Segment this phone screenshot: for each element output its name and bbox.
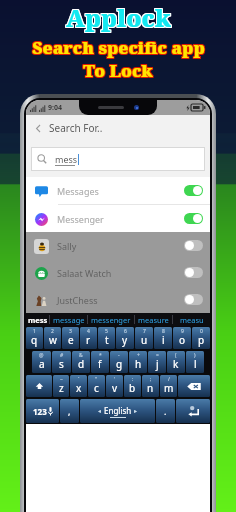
button[interactable]: . bbox=[156, 399, 175, 423]
button[interactable]: & bbox=[72, 351, 90, 373]
button[interactable]: = bbox=[148, 351, 166, 373]
staticText: m bbox=[164, 381, 174, 395]
staticText: t bbox=[105, 333, 109, 347]
button[interactable]: 7 bbox=[135, 327, 153, 349]
button[interactable]: + bbox=[129, 351, 147, 373]
button[interactable]: : bbox=[124, 375, 141, 397]
button[interactable]: Shift bbox=[26, 375, 52, 397]
staticText: Applock bbox=[65, 1, 170, 34]
button[interactable]: # bbox=[52, 351, 71, 373]
staticText: y bbox=[122, 333, 128, 347]
staticText: To Lock bbox=[84, 59, 154, 82]
staticText: . bbox=[164, 405, 167, 417]
staticText: " bbox=[95, 376, 98, 383]
button[interactable]: JustChess bbox=[26, 286, 210, 313]
staticText: Applock bbox=[65, 0, 170, 33]
staticText: = bbox=[156, 352, 159, 359]
button[interactable]: Salaat Watch bbox=[26, 259, 210, 286]
button[interactable]: ( bbox=[167, 351, 185, 373]
button[interactable]: 4 bbox=[80, 327, 97, 349]
button[interactable]: 9 bbox=[173, 327, 191, 349]
staticText: Applock bbox=[66, 0, 171, 33]
button[interactable]: ' bbox=[106, 375, 123, 397]
staticText: z bbox=[59, 381, 64, 395]
button[interactable]: " bbox=[88, 375, 105, 397]
staticText: q bbox=[31, 333, 38, 347]
staticText: English bbox=[104, 405, 132, 416]
button[interactable]: 0 bbox=[192, 327, 210, 349]
button[interactable]: Messages bbox=[26, 177, 210, 204]
button[interactable]: Toggle off bbox=[184, 240, 203, 251]
button[interactable]: ; bbox=[142, 375, 159, 397]
staticText: * bbox=[99, 352, 102, 359]
staticText: Applock bbox=[67, 2, 172, 35]
staticText: 9:04 bbox=[48, 103, 62, 113]
staticText: ◂ bbox=[98, 407, 102, 414]
staticText: 123 bbox=[33, 406, 47, 417]
staticText: s bbox=[59, 357, 64, 371]
staticText: f bbox=[98, 357, 102, 371]
button[interactable]: 6 bbox=[116, 327, 134, 349]
button[interactable]: message bbox=[50, 313, 87, 326]
staticText: + bbox=[137, 352, 140, 359]
staticText: JustChess bbox=[57, 294, 98, 306]
button[interactable]: mess bbox=[31, 147, 205, 171]
button[interactable]: 1 bbox=[26, 327, 43, 349]
staticText: & bbox=[79, 352, 83, 359]
staticText: k bbox=[173, 357, 179, 371]
staticText: p bbox=[198, 333, 205, 347]
staticText: @ bbox=[39, 352, 44, 359]
button[interactable]: Toggle off bbox=[184, 267, 203, 278]
button[interactable]: Space, English bbox=[80, 399, 155, 423]
button[interactable]: 3 bbox=[62, 327, 79, 349]
button[interactable]: Toggle on bbox=[184, 213, 203, 224]
button[interactable]: @ bbox=[32, 351, 51, 373]
button[interactable]: measure bbox=[135, 313, 172, 326]
staticText: Salaat Watch bbox=[57, 267, 112, 279]
button[interactable]: 2 bbox=[44, 327, 61, 349]
staticText: 3 bbox=[69, 328, 72, 335]
button[interactable]: Enter bbox=[176, 399, 210, 423]
button[interactable]: Toggle off bbox=[184, 294, 203, 305]
staticText: 1 bbox=[33, 328, 36, 335]
staticText: Search For.. bbox=[49, 121, 103, 135]
staticText: g bbox=[116, 357, 123, 371]
staticText: o bbox=[179, 333, 186, 347]
staticText: ` bbox=[78, 376, 80, 383]
button[interactable]: Backspace bbox=[178, 375, 210, 397]
staticText: Search specific app bbox=[31, 37, 204, 60]
staticText: i bbox=[162, 333, 165, 347]
button[interactable]: - bbox=[110, 351, 128, 373]
button[interactable]: measu bbox=[173, 313, 210, 326]
button[interactable]: messenger bbox=[88, 313, 134, 326]
button[interactable]: ) bbox=[186, 351, 204, 373]
staticText: a bbox=[39, 357, 45, 371]
button[interactable]: Numbers and voice input bbox=[26, 399, 59, 423]
staticText: / bbox=[168, 376, 170, 383]
button[interactable]: mess bbox=[26, 313, 49, 326]
button[interactable]: ~ bbox=[53, 375, 69, 397]
staticText: Search specific app bbox=[33, 35, 206, 58]
button[interactable]: 5 bbox=[98, 327, 115, 349]
staticText: 6 bbox=[124, 328, 127, 335]
button[interactable]: ` bbox=[70, 375, 87, 397]
button[interactable]: Back bbox=[31, 121, 45, 135]
staticText: To Lock bbox=[83, 59, 153, 82]
staticText: To Lock bbox=[83, 58, 153, 81]
button[interactable]: Sally bbox=[26, 232, 210, 259]
button[interactable]: / bbox=[160, 375, 177, 397]
staticText: messenger bbox=[91, 315, 131, 325]
staticText: Search specific app bbox=[32, 35, 205, 58]
staticText: v bbox=[112, 381, 118, 395]
staticText: 4 bbox=[87, 328, 90, 335]
staticText: Search specific app bbox=[31, 36, 204, 59]
button[interactable]: * bbox=[91, 351, 109, 373]
button[interactable]: Messenger bbox=[26, 205, 210, 232]
staticText: Messages bbox=[57, 185, 99, 197]
staticText: To Lock bbox=[84, 58, 154, 81]
staticText: ~ bbox=[60, 376, 63, 383]
button[interactable]: 8 bbox=[154, 327, 172, 349]
button[interactable]: Toggle on bbox=[184, 185, 203, 196]
staticText: measure bbox=[138, 315, 169, 325]
button[interactable]: , bbox=[60, 399, 79, 423]
